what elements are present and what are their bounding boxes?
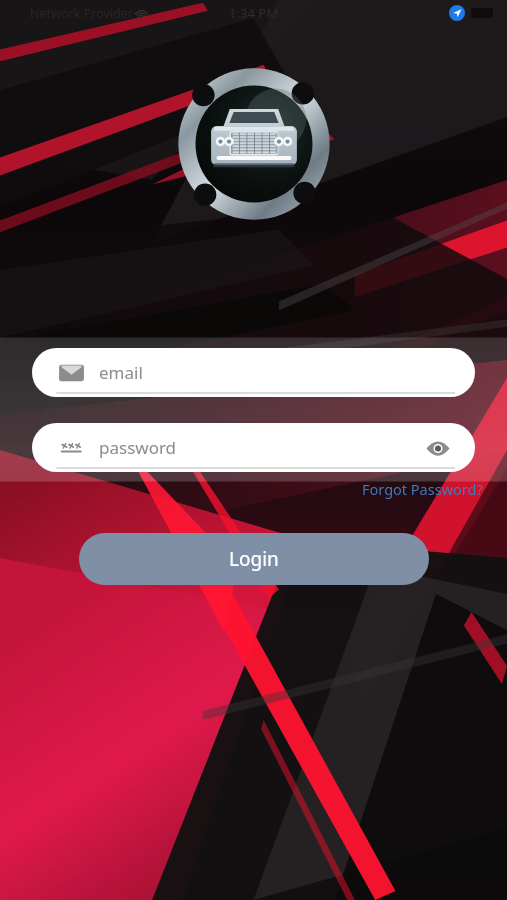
button[interactable]: Login (79, 533, 429, 585)
button[interactable]: Forgot Password? (358, 475, 487, 503)
staticText: Login (229, 546, 279, 572)
staticText: email (99, 361, 143, 384)
button[interactable]: password (32, 423, 475, 472)
button[interactable]: Show password (423, 433, 453, 463)
staticText: Forgot Password? (362, 479, 483, 499)
staticText: 1:34 PM (229, 4, 279, 22)
other: Location active (449, 5, 465, 21)
staticText: password (99, 436, 177, 459)
button[interactable]: email (32, 348, 475, 397)
staticText: Network Provider (30, 5, 133, 22)
